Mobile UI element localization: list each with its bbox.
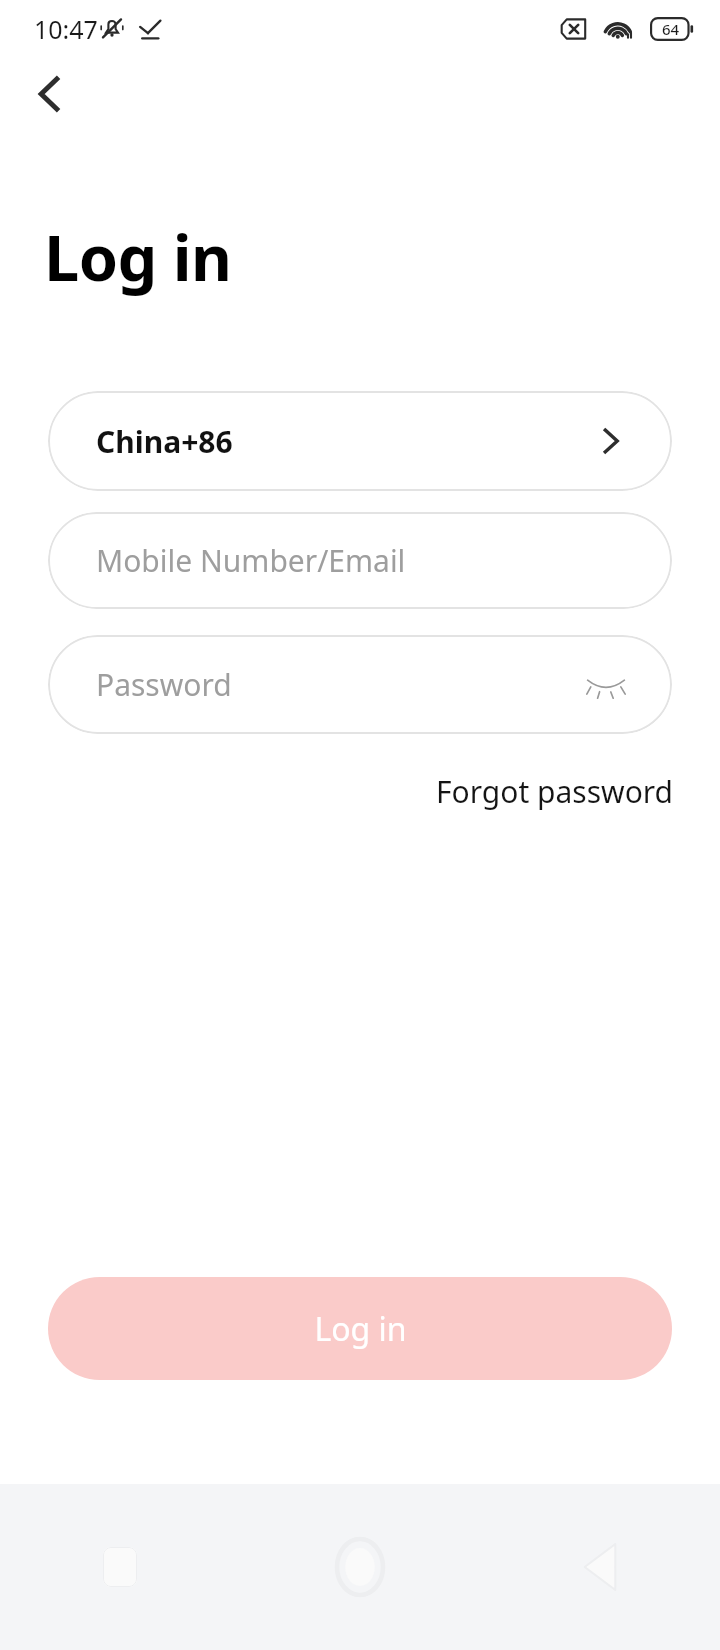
staticText: 10:47 [34, 12, 98, 46]
button[interactable]: Password [48, 635, 672, 734]
button[interactable]: China+86 [48, 391, 672, 491]
staticText: Log in [314, 1307, 407, 1351]
button[interactable]: Back [14, 58, 86, 130]
staticText: China+86 [96, 421, 233, 462]
staticText: Log in [44, 214, 232, 300]
button[interactable]: Mobile Number/Email [48, 512, 672, 609]
staticText: Forgot password [436, 771, 674, 812]
button[interactable]: Forgot password [430, 763, 680, 820]
button[interactable]: Show password [578, 657, 634, 713]
staticText: Password [96, 664, 232, 705]
staticText: 64 [662, 19, 680, 39]
staticText: Mobile Number/Email [96, 540, 406, 581]
button[interactable]: Log in [48, 1277, 672, 1380]
